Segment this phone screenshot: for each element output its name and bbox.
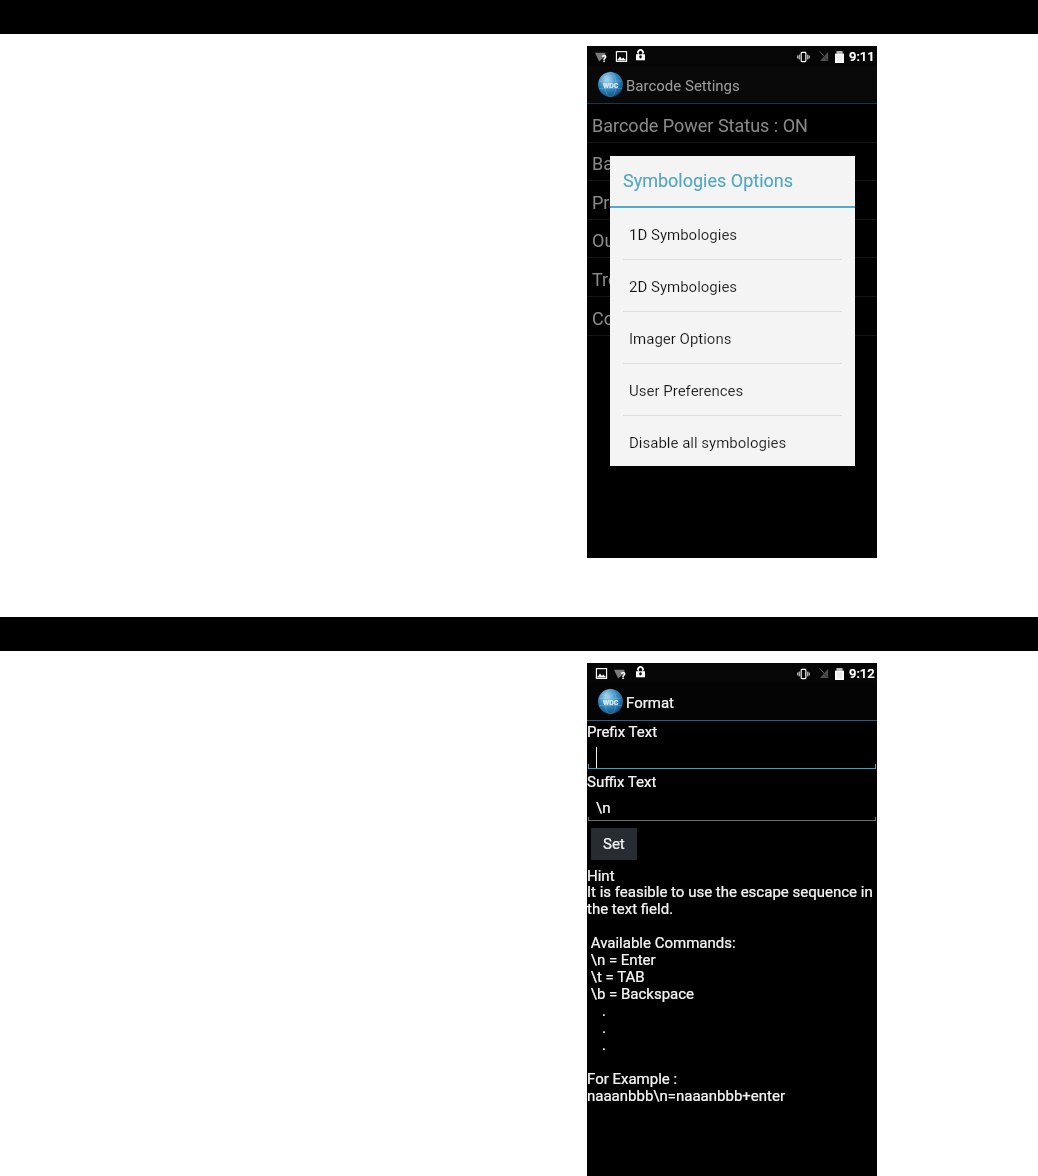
staticText: ? — [602, 54, 607, 65]
staticText: 2D Symbologies — [629, 278, 738, 296]
staticText: Imager Options — [629, 330, 732, 348]
staticText: Suffix Text — [587, 773, 657, 791]
staticText: Format — [626, 694, 674, 712]
staticText: 9:12 — [849, 666, 875, 681]
button[interactable]: Suffix text field — [588, 795, 876, 821]
button[interactable]: 1D Symbologies — [610, 208, 855, 260]
staticText: Output Settings — [592, 230, 717, 251]
staticText: Profile Settings — [592, 192, 714, 213]
staticText: Disable all symbologies — [629, 434, 787, 452]
staticText: Prefix Text — [587, 723, 658, 741]
button[interactable]: 2D Symbologies — [610, 260, 855, 312]
button[interactable]: WDC — [587, 683, 877, 720]
staticText: \n — [596, 799, 611, 817]
button[interactable]: Troubleshooting — [587, 258, 877, 297]
staticText: Barcode Power Status : ON — [592, 115, 808, 136]
staticText: Barcode Settings — [626, 77, 740, 95]
staticText: Set — [603, 835, 625, 853]
button[interactable]: Barcode Power Status : ON — [587, 104, 877, 143]
button[interactable]: Disable all symbologies — [610, 416, 855, 468]
staticText: ? — [621, 671, 626, 682]
button[interactable]: Continuous Scan — [587, 297, 877, 336]
staticText: Continuous Scan — [592, 308, 728, 329]
button[interactable]: WDC — [587, 66, 877, 103]
button[interactable]: Imager Options — [610, 312, 855, 364]
staticText: 9:11 — [849, 49, 875, 64]
button[interactable]: Set — [591, 828, 637, 860]
button[interactable]: Profile Settings — [587, 181, 877, 220]
button[interactable]: Output Settings — [587, 219, 877, 258]
staticText: Symbologies Options — [623, 170, 794, 191]
staticText: 1D Symbologies — [629, 226, 738, 244]
staticText: WDC — [603, 82, 619, 90]
staticText: Troubleshooting — [592, 269, 723, 290]
button[interactable]: User Preferences — [610, 364, 855, 416]
staticText: WDC — [603, 699, 619, 707]
staticText: User Preferences — [629, 382, 744, 400]
staticText: Barcode Settings — [592, 153, 729, 174]
staticText: Hint It is feasible to use the escape se… — [587, 867, 873, 1105]
button[interactable]: Prefix text field — [588, 745, 876, 769]
button[interactable]: Barcode Settings — [587, 142, 877, 181]
